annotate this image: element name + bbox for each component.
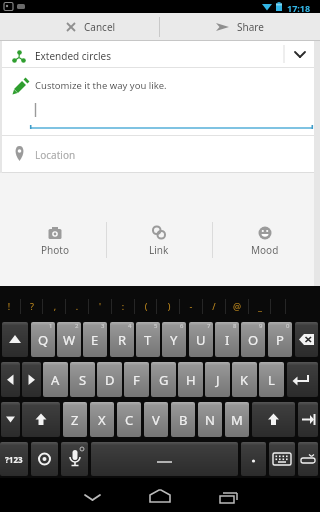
staticText: W (63, 331, 76, 349)
staticText: Customize it the way you like. (35, 79, 167, 92)
staticText: X (98, 411, 106, 429)
button[interactable] (241, 442, 266, 476)
staticText: D (105, 371, 115, 389)
staticText: 9 (259, 322, 263, 330)
staticText: 6 (180, 322, 184, 330)
button[interactable] (1, 362, 20, 397)
staticText: H (186, 371, 196, 389)
button[interactable]: W (57, 322, 81, 357)
staticText: C (125, 411, 134, 429)
button[interactable] (91, 442, 238, 476)
button[interactable]: ?123 (0, 442, 28, 476)
button[interactable] (295, 322, 318, 357)
staticText: Q (38, 331, 49, 349)
staticText: Y (170, 331, 178, 349)
button[interactable]: S (70, 362, 95, 397)
staticText: E (91, 331, 99, 349)
button[interactable]: B (171, 402, 195, 437)
button[interactable]: Extended circles (2, 41, 314, 67)
staticText: U (196, 331, 206, 349)
button[interactable]: V (144, 402, 168, 437)
staticText: Cancel (84, 20, 116, 34)
staticText: : (118, 300, 128, 312)
staticText: ? (27, 300, 37, 312)
button[interactable]: R (110, 322, 134, 357)
staticText: P (276, 331, 284, 349)
button[interactable]: U (189, 322, 213, 357)
staticText: F (133, 371, 140, 389)
staticText: J (216, 371, 220, 389)
staticText: A (51, 371, 60, 389)
staticText: , (50, 300, 60, 312)
button[interactable] (269, 442, 295, 476)
button[interactable] (207, 478, 249, 512)
button[interactable]: M (225, 402, 249, 437)
staticText: / (209, 300, 219, 312)
button[interactable]: X (90, 402, 114, 437)
button[interactable] (139, 478, 181, 512)
staticText: 3 (101, 322, 105, 330)
button[interactable]: Cancel (0, 13, 159, 41)
button[interactable] (72, 478, 114, 512)
staticText: Location (35, 148, 76, 162)
button[interactable]: P (268, 322, 292, 357)
button[interactable]: A (43, 362, 68, 397)
staticText: 4 (128, 322, 132, 330)
staticText: L (268, 371, 275, 389)
staticText: 7 (207, 322, 211, 330)
button[interactable] (61, 442, 88, 476)
button[interactable]: D (97, 362, 122, 397)
button[interactable]: Location (2, 136, 314, 172)
staticText: Link (149, 243, 169, 257)
button[interactable]: E (83, 322, 107, 357)
button[interactable]: F (124, 362, 149, 397)
staticText: ?123 (5, 454, 23, 465)
button[interactable]: Link (109, 225, 209, 265)
staticText: _ (255, 300, 265, 312)
button[interactable] (31, 442, 58, 476)
button[interactable]: L (259, 362, 284, 397)
button[interactable]: G (151, 362, 176, 397)
staticText: B (179, 411, 188, 429)
button[interactable]: N (198, 402, 222, 437)
button[interactable]: I (215, 322, 239, 357)
button[interactable] (298, 442, 318, 476)
staticText: Share (237, 20, 264, 34)
button[interactable]: J (205, 362, 230, 397)
staticText: I (225, 331, 230, 349)
staticText: N (205, 411, 215, 429)
staticText: - (186, 300, 196, 312)
button[interactable]: C (117, 402, 141, 437)
staticText: R (118, 331, 127, 349)
staticText: O (248, 331, 259, 349)
button[interactable]: T (136, 322, 160, 357)
button[interactable] (2, 322, 28, 357)
button[interactable]: Photo (5, 225, 105, 265)
button[interactable]: O (241, 322, 265, 357)
button[interactable] (1, 402, 20, 437)
button[interactable]: Z (63, 402, 87, 437)
staticText: Photo (41, 243, 69, 257)
button[interactable]: K (232, 362, 257, 397)
staticText: ! (4, 300, 14, 312)
staticText: G (159, 371, 169, 389)
button[interactable]: Share (160, 13, 320, 41)
button[interactable] (22, 362, 41, 397)
staticText: . (72, 300, 82, 312)
staticText: 2 (75, 322, 79, 330)
button[interactable] (22, 402, 60, 437)
staticText: V (152, 411, 160, 429)
button[interactable] (298, 402, 318, 437)
button[interactable] (287, 362, 318, 397)
button[interactable]: Customize it the way you like. (2, 68, 314, 135)
button[interactable]: Y (162, 322, 186, 357)
button[interactable]: Mood (215, 225, 315, 265)
button[interactable]: Q (31, 322, 55, 357)
staticText: 5 (154, 322, 158, 330)
button[interactable]: H (178, 362, 203, 397)
staticText: T (144, 331, 152, 349)
staticText: 0 (286, 322, 290, 330)
staticText: 1 (49, 322, 53, 330)
staticText: 17:18 (287, 2, 311, 14)
button[interactable] (252, 402, 295, 437)
